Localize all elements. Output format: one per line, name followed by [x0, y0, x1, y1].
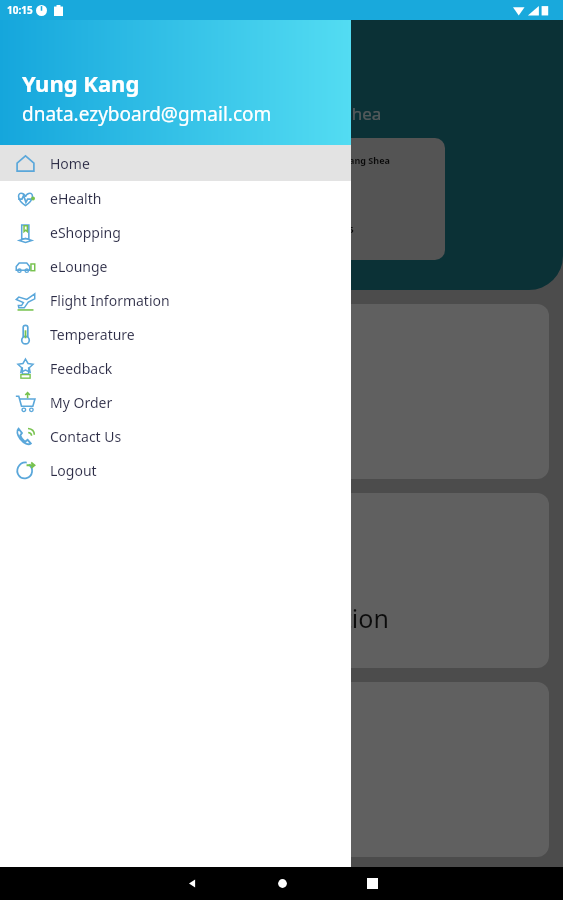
staticText: Flight Information [175, 601, 389, 635]
staticText: Feedback [50, 359, 113, 378]
staticText: Flight Information [50, 291, 170, 310]
staticText: 10:15 [7, 3, 33, 17]
staticText: GA 0835 [318, 223, 354, 235]
button[interactable]: Home [0, 145, 351, 181]
staticText: Yung Kang Shea [252, 102, 382, 125]
button[interactable]: Temperature [0, 317, 351, 351]
staticText: dnata.ezyboard@gmail.com [22, 101, 272, 127]
staticText: SIN [318, 177, 334, 189]
button[interactable]: Home [237, 867, 327, 900]
staticText: Temperature [50, 325, 135, 344]
staticText: Yung Kang Shea [318, 154, 390, 166]
staticText: eHealth [50, 189, 102, 208]
staticText: Yung Kang [22, 68, 140, 98]
staticText: eLounge [50, 257, 108, 276]
button[interactable]: Contact Us [0, 419, 351, 453]
button[interactable]: eShopping [14, 304, 549, 479]
button[interactable]: eHealth [0, 181, 351, 215]
button[interactable]: eLounge [0, 249, 351, 283]
button[interactable]: Recent apps [327, 867, 417, 900]
staticText: Name [318, 143, 341, 154]
button[interactable]: My Order [0, 385, 351, 419]
staticText: Logout [50, 461, 97, 480]
button[interactable]: Feedback [0, 351, 351, 385]
button[interactable]: eShopping [0, 215, 351, 249]
button[interactable]: Feedback [14, 682, 549, 857]
button[interactable]: Logout [0, 453, 351, 487]
staticText: Home [50, 154, 90, 173]
button[interactable]: Flight Information [14, 493, 549, 668]
staticText: Contact Us [50, 427, 122, 446]
staticText: My Order [50, 393, 113, 412]
staticText: eShopping [50, 223, 121, 242]
button[interactable]: Back [147, 867, 237, 900]
button[interactable]: Flight Information [0, 283, 351, 317]
